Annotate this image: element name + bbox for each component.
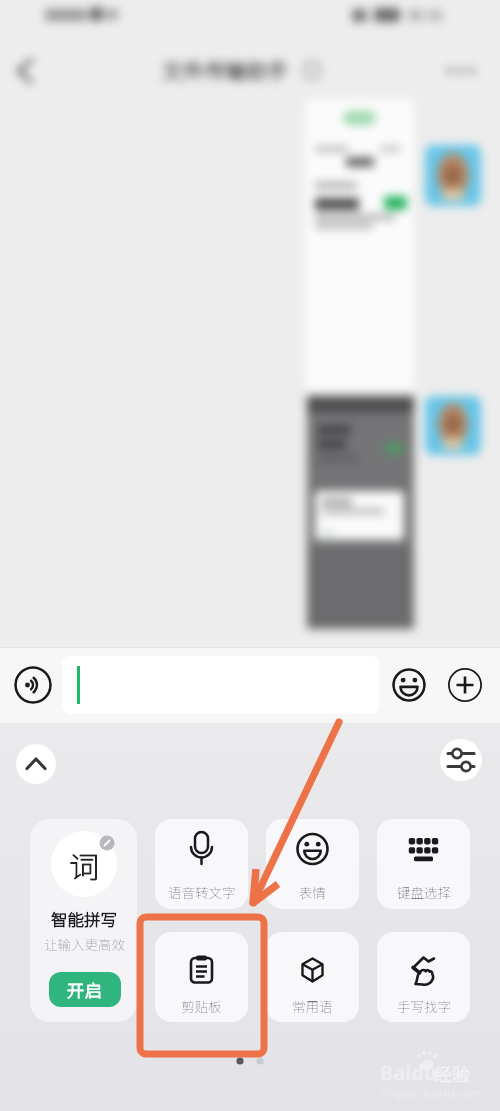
button[interactable]: 键盘选择 — [377, 819, 470, 909]
button[interactable] — [30, 819, 137, 1022]
staticText: 智能拼写 — [51, 907, 117, 931]
staticText: 智能拼写 — [51, 907, 117, 931]
staticText: 剪贴板 — [181, 996, 222, 1016]
button[interactable] — [444, 58, 480, 84]
button[interactable]: 剪贴板 — [155, 932, 248, 1022]
staticText: 表情 — [299, 882, 326, 902]
staticText: 键盘选择 — [397, 882, 451, 902]
staticText: 经验 — [434, 1060, 470, 1086]
button[interactable]: 手写找字 — [377, 932, 470, 1022]
staticText: Baidu — [380, 1059, 437, 1086]
staticText: 词 — [69, 843, 99, 886]
staticText: 开启 — [67, 977, 103, 1002]
button[interactable] — [16, 744, 56, 784]
button[interactable]: 表情 — [266, 819, 359, 909]
staticText: 经验 — [434, 1060, 470, 1086]
button[interactable] — [14, 666, 52, 704]
button[interactable]: 语音转文字 — [155, 819, 248, 909]
staticText: 文件传输助手 — [162, 55, 288, 85]
button[interactable] — [8, 55, 42, 87]
staticText: 常用语 — [292, 996, 333, 1016]
staticText: 让输入更高效 — [44, 934, 125, 954]
button[interactable] — [440, 739, 482, 781]
staticText: 文件传输助手 — [162, 55, 288, 85]
button[interactable]: 开启 — [49, 972, 121, 1007]
button[interactable]: 常用语 — [266, 932, 359, 1022]
button[interactable] — [392, 668, 426, 702]
button[interactable] — [62, 656, 379, 714]
button[interactable] — [448, 668, 482, 702]
staticText: 手写找字 — [397, 996, 451, 1016]
staticText: 词 — [69, 843, 99, 886]
staticText: 语音转文字 — [168, 882, 236, 902]
staticText: 开启 — [67, 977, 103, 1002]
